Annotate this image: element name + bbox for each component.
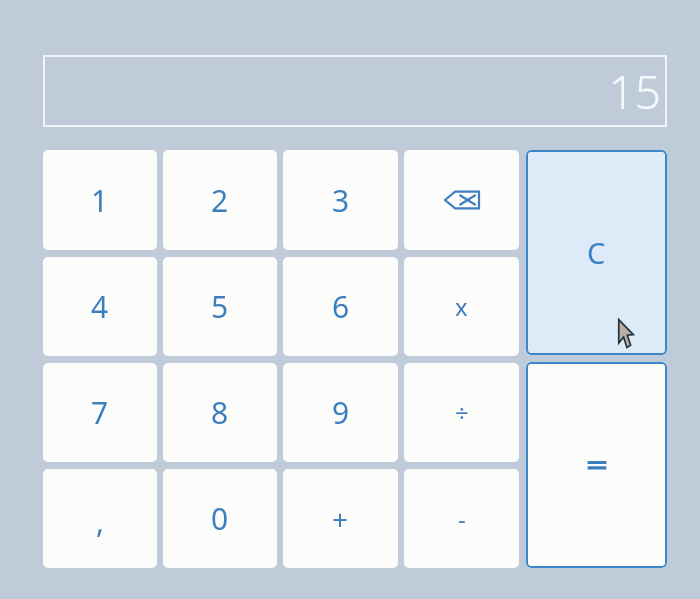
- staticText: ÷: [455, 396, 469, 429]
- staticText: 0: [211, 498, 229, 539]
- staticText: ,: [96, 501, 105, 542]
- button[interactable]: 0: [163, 469, 277, 568]
- staticText: 3: [332, 180, 350, 221]
- button[interactable]: +: [283, 469, 398, 568]
- button[interactable]: 7: [43, 363, 157, 462]
- staticText: 6: [332, 286, 350, 327]
- button[interactable]: ,: [43, 469, 157, 568]
- staticText: x: [455, 290, 468, 323]
- staticText: C: [587, 233, 606, 272]
- staticText: 7: [91, 392, 109, 433]
- button[interactable]: ÷: [404, 363, 519, 462]
- staticText: 9: [332, 392, 350, 433]
- button[interactable]: 8: [163, 363, 277, 462]
- button[interactable]: 6: [283, 257, 398, 356]
- button[interactable]: 5: [163, 257, 277, 356]
- staticText: 2: [211, 180, 229, 221]
- button[interactable]: 15: [43, 55, 667, 127]
- button[interactable]: C: [526, 150, 667, 355]
- staticText: 8: [211, 392, 229, 433]
- staticText: +: [332, 500, 349, 538]
- staticText: -: [458, 502, 466, 535]
- button[interactable]: Backspace: [404, 150, 519, 250]
- button[interactable]: 9: [283, 363, 398, 462]
- button[interactable]: 1: [43, 150, 157, 250]
- staticText: 15: [608, 60, 661, 123]
- button[interactable]: 2: [163, 150, 277, 250]
- staticText: 5: [211, 286, 229, 327]
- button[interactable]: [526, 362, 667, 568]
- staticText: 1: [91, 180, 109, 221]
- button[interactable]: x: [404, 257, 519, 356]
- button[interactable]: 4: [43, 257, 157, 356]
- staticText: 4: [91, 286, 109, 327]
- button[interactable]: 3: [283, 150, 398, 250]
- button[interactable]: -: [404, 469, 519, 568]
